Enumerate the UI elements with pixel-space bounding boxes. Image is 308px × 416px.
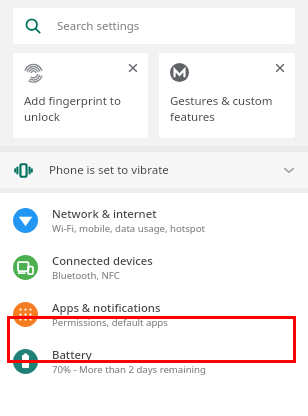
button[interactable]: Battery: [0, 338, 308, 385]
button[interactable]: Phone is set to vibrate: [0, 152, 308, 188]
staticText: Phone is set to vibrate: [49, 162, 169, 178]
button[interactable]: Add fingerprint to unlock: [13, 53, 148, 138]
button[interactable]: Apps & notifications: [0, 291, 308, 338]
staticText: Gestures & custom features: [170, 93, 273, 125]
staticText: Wi-Fi, mobile, data usage, hotspot: [52, 222, 205, 235]
button[interactable]: Connected devices: [0, 244, 308, 291]
button[interactable]: Dismiss Add fingerprint to unlock: [125, 60, 141, 76]
other: Expand: [282, 163, 296, 177]
button[interactable]: Network & internet: [0, 197, 308, 244]
staticText: Add fingerprint to unlock: [24, 93, 121, 125]
button[interactable]: Dismiss Gestures and custom features: [272, 60, 288, 76]
staticText: Permissions, default apps: [52, 316, 168, 329]
button[interactable]: Gestures & custom features: [159, 53, 295, 138]
staticText: Apps & notifications: [52, 300, 161, 315]
staticText: Battery: [52, 347, 92, 362]
staticText: 70% - More than 2 days remaining: [52, 363, 206, 376]
staticText: Connected devices: [52, 253, 153, 268]
button[interactable]: Search settings: [13, 8, 295, 44]
staticText: Network & internet: [52, 206, 157, 221]
staticText: Bluetooth, NFC: [52, 269, 120, 282]
staticText: Search settings: [57, 18, 140, 34]
